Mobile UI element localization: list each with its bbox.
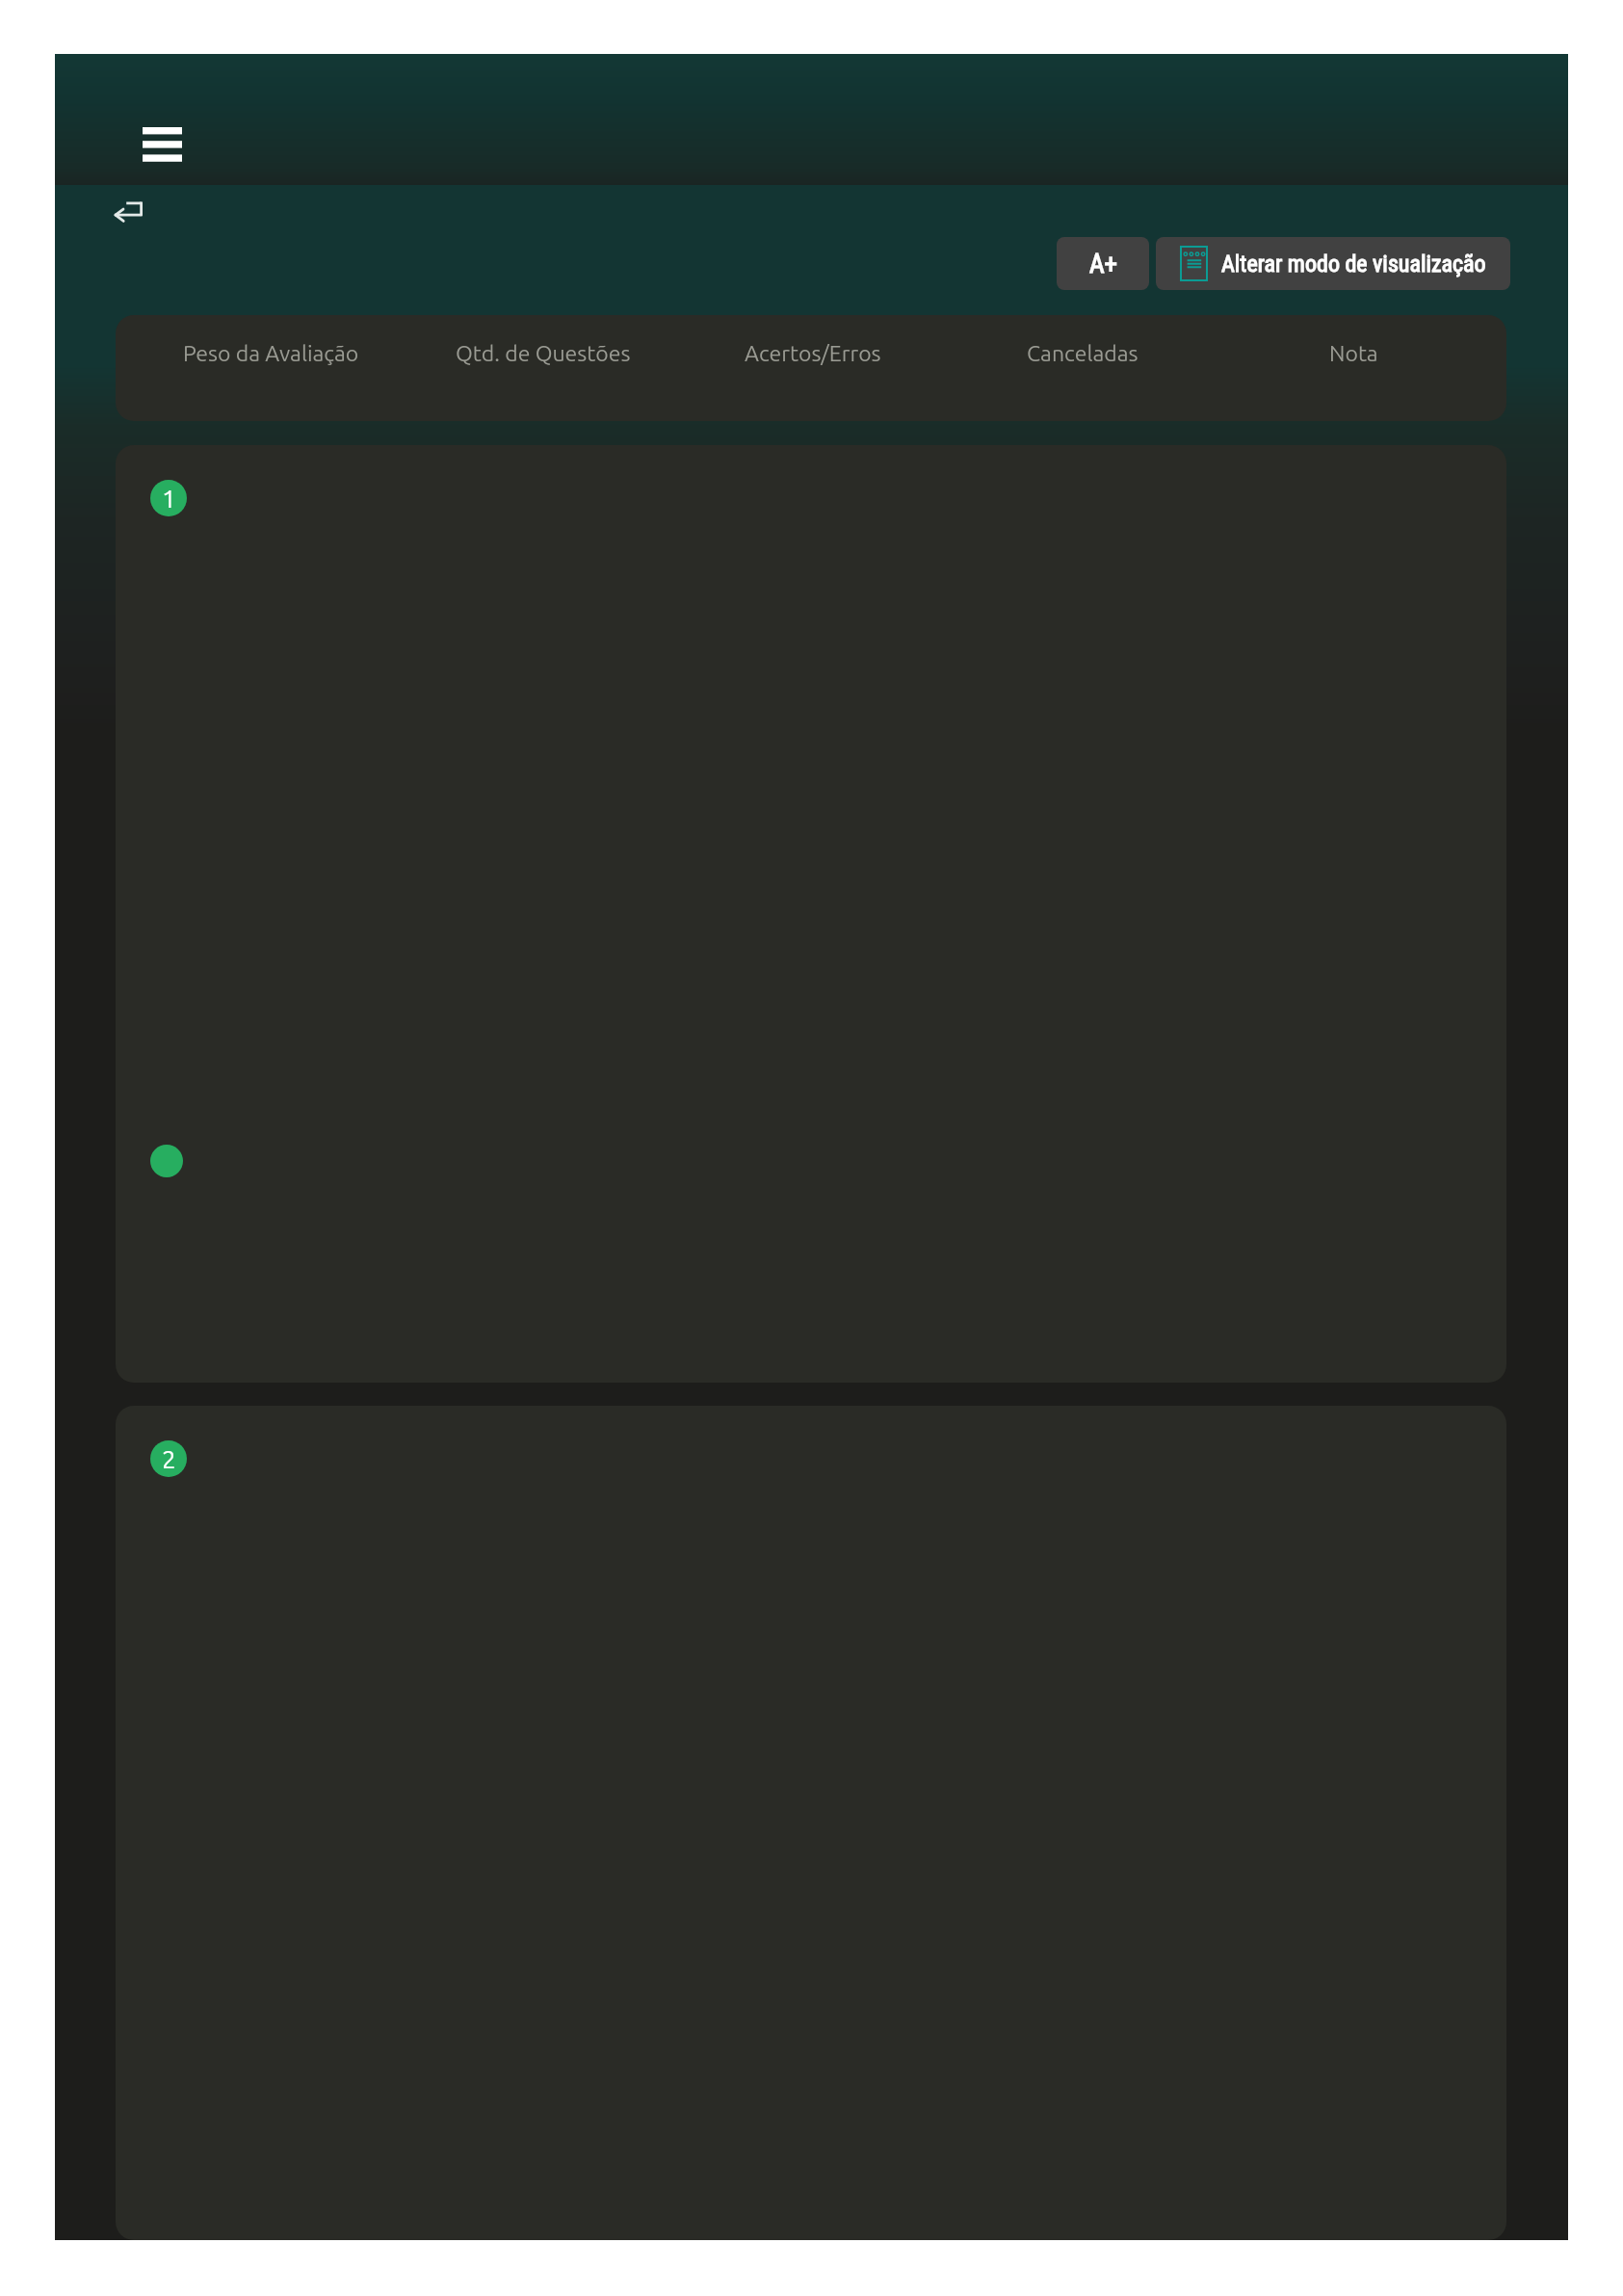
button[interactable]: Alterar modo de visualização [1156, 237, 1510, 290]
button[interactable]: Voltar [92, 176, 166, 250]
staticText: 2 [162, 1445, 176, 1473]
button[interactable]: 2 [116, 1406, 1506, 2240]
staticText: A+ [1089, 249, 1117, 279]
staticText: Canceladas [1027, 341, 1139, 366]
staticText: Alterar modo de visualização [1221, 251, 1486, 277]
button[interactable]: A+ [1057, 237, 1149, 290]
staticText: Peso da Avaliação [183, 341, 359, 366]
staticText: Nota [1329, 341, 1378, 366]
button[interactable]: Abrir menu [133, 116, 191, 173]
staticText: Qtd. de Questões [456, 341, 631, 366]
button[interactable]: 1 [116, 445, 1506, 1383]
staticText: 1 [162, 485, 176, 513]
staticText: Acertos/Erros [745, 341, 881, 366]
